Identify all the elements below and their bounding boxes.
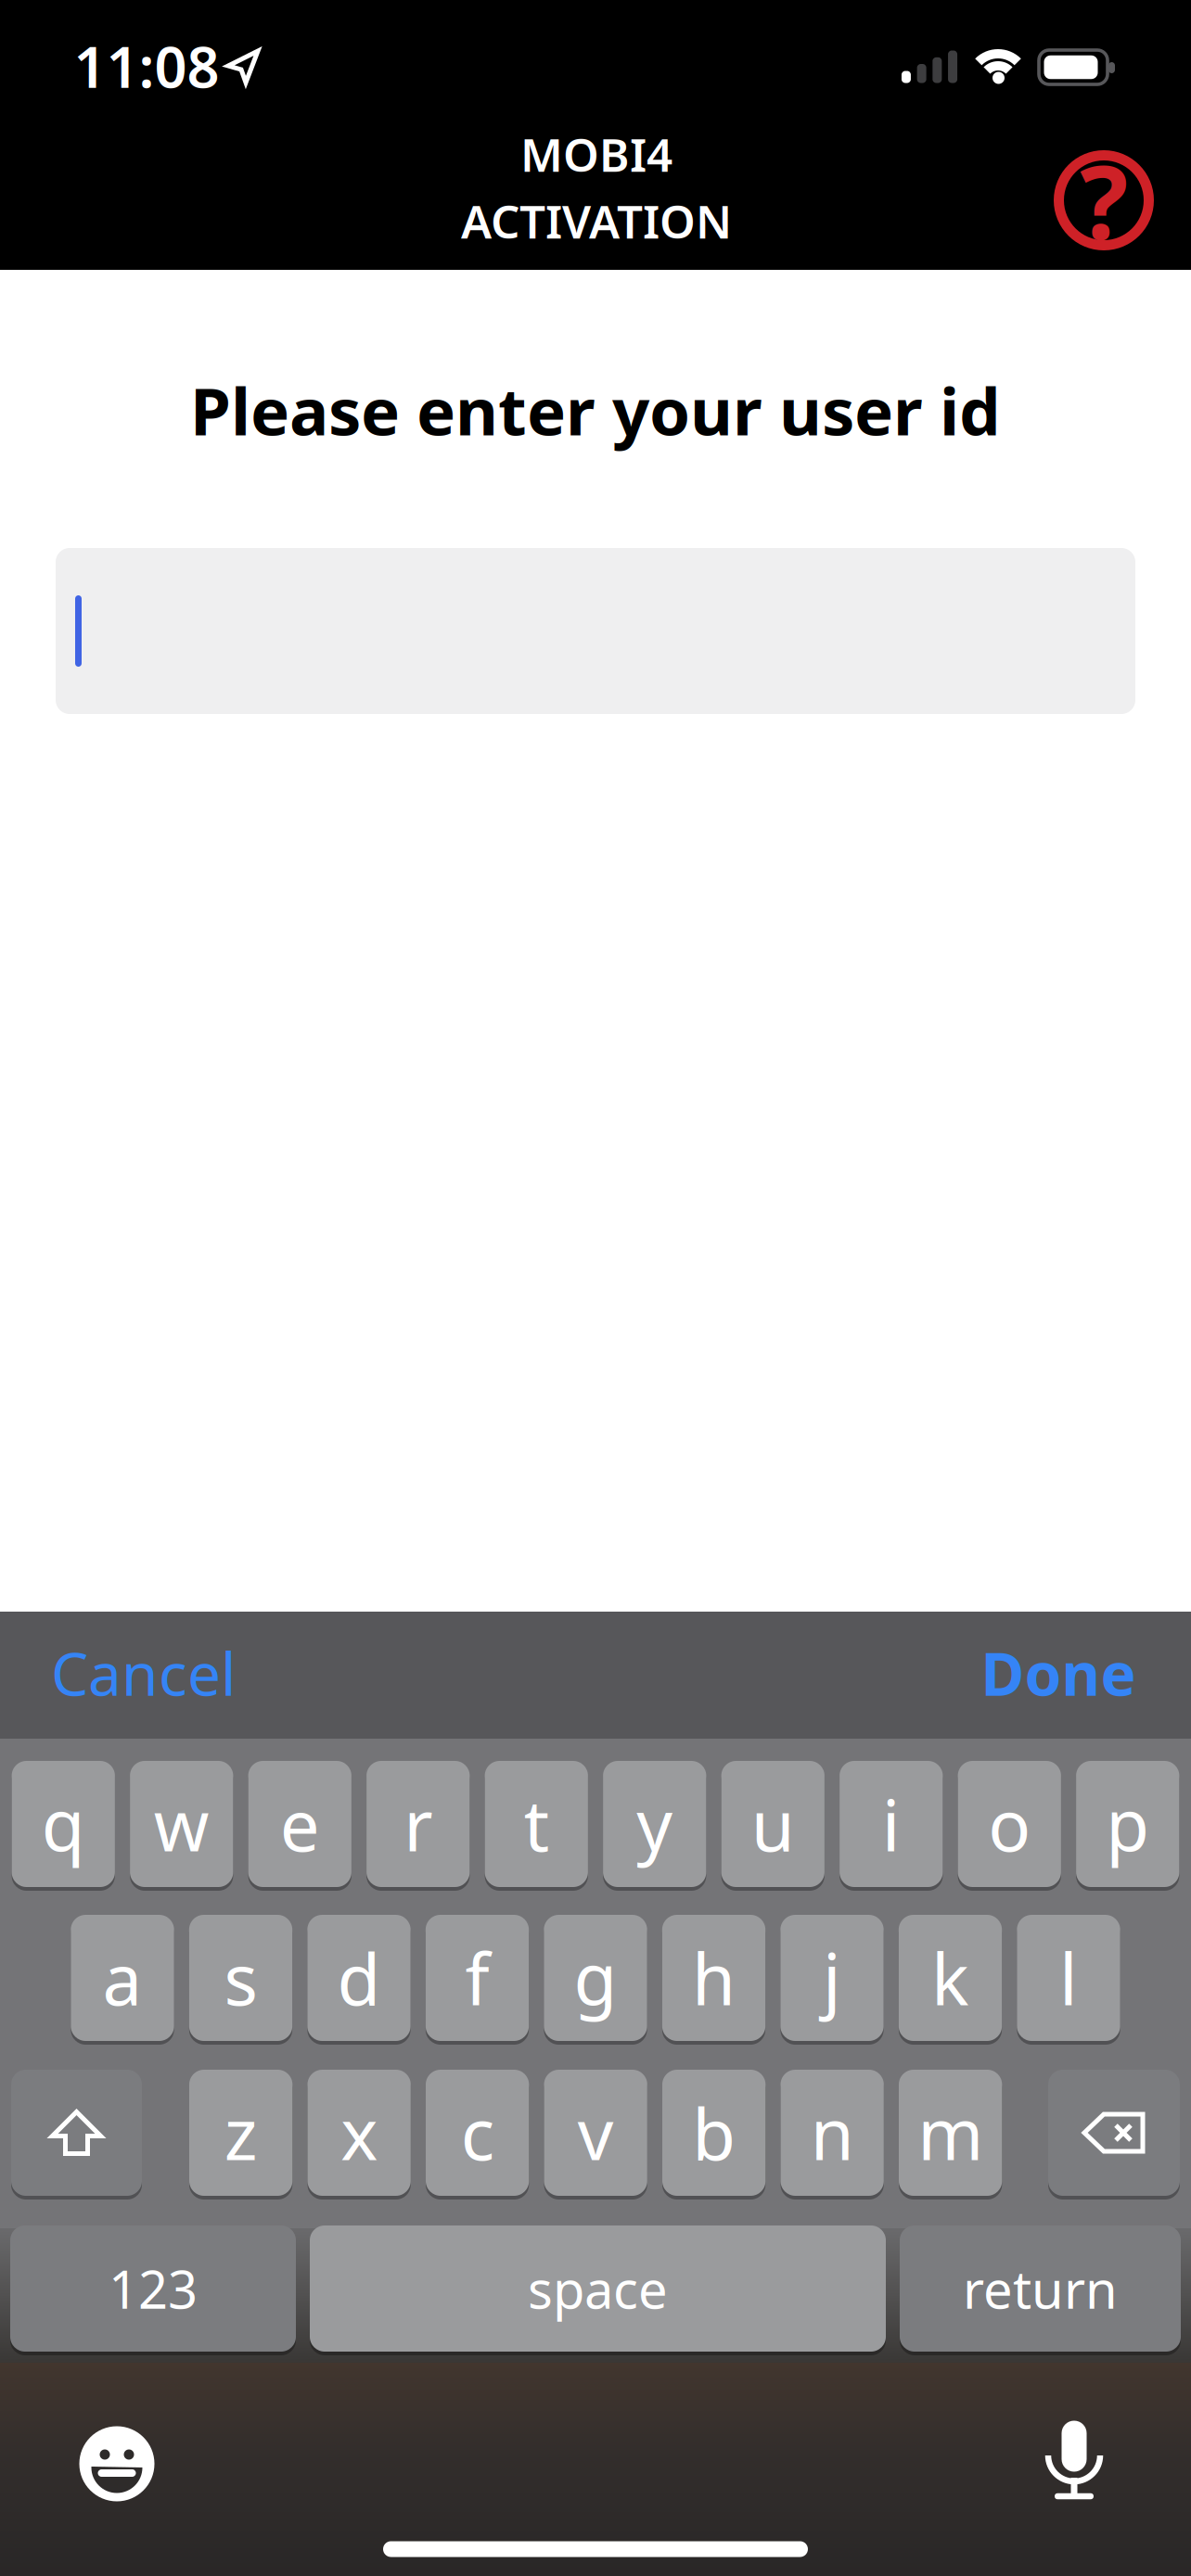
button[interactable]: j bbox=[780, 1913, 884, 2043]
button[interactable]: o bbox=[958, 1759, 1061, 1889]
staticText: 11:08 bbox=[74, 28, 219, 104]
button[interactable]: Done bbox=[981, 1633, 1136, 1712]
button[interactable]: b bbox=[662, 2068, 766, 2198]
button[interactable]: g bbox=[544, 1913, 647, 2043]
button[interactable]: Cancel bbox=[51, 1633, 237, 1712]
button[interactable]: e bbox=[248, 1759, 351, 1889]
button[interactable]: x bbox=[307, 2068, 411, 2198]
staticText: q bbox=[42, 1777, 85, 1871]
button[interactable]: h bbox=[662, 1913, 765, 2043]
staticText: i bbox=[882, 1777, 900, 1871]
staticText: a bbox=[102, 1931, 142, 2025]
staticText: p bbox=[1106, 1777, 1150, 1871]
staticText: g bbox=[574, 1931, 617, 2025]
button[interactable] bbox=[78, 2425, 156, 2503]
staticText: c bbox=[461, 2086, 494, 2179]
button[interactable]: d bbox=[307, 1913, 411, 2043]
button[interactable]: c bbox=[426, 2068, 529, 2198]
button[interactable]: f bbox=[426, 1913, 529, 2043]
staticText: Please enter your user id bbox=[190, 366, 1001, 453]
staticText: l bbox=[1059, 1931, 1078, 2025]
staticText: y bbox=[637, 1777, 673, 1871]
staticText: j bbox=[823, 1931, 841, 2025]
button[interactable]: w bbox=[130, 1759, 233, 1889]
staticText: b bbox=[692, 2086, 736, 2179]
button[interactable]: t bbox=[485, 1759, 588, 1889]
staticText: r bbox=[404, 1777, 433, 1871]
button[interactable] bbox=[1044, 2417, 1105, 2502]
button[interactable]: q bbox=[12, 1759, 115, 1889]
staticText: f bbox=[465, 1931, 489, 2025]
button[interactable]: s bbox=[189, 1913, 292, 2043]
staticText: h bbox=[692, 1931, 736, 2025]
staticText: 123 bbox=[109, 2254, 198, 2323]
button[interactable]: ? bbox=[1054, 150, 1154, 250]
staticText: MOBI4 bbox=[520, 124, 672, 184]
button[interactable]: u bbox=[721, 1759, 825, 1889]
button[interactable] bbox=[56, 548, 1135, 714]
staticText: u bbox=[751, 1777, 795, 1871]
staticText: o bbox=[988, 1777, 1031, 1871]
staticText: ? bbox=[1080, 133, 1128, 268]
staticText: e bbox=[280, 1777, 320, 1871]
staticText: v bbox=[578, 2086, 614, 2179]
button[interactable] bbox=[11, 2068, 142, 2198]
button[interactable]: n bbox=[781, 2068, 884, 2198]
button[interactable]: r bbox=[366, 1759, 470, 1889]
button[interactable]: 123 bbox=[10, 2224, 296, 2353]
button[interactable]: return bbox=[900, 2224, 1181, 2353]
button[interactable]: a bbox=[71, 1913, 174, 2043]
button[interactable]: y bbox=[603, 1759, 706, 1889]
staticText: s bbox=[224, 1931, 257, 2025]
button[interactable]: l bbox=[1017, 1913, 1120, 2043]
staticText: d bbox=[337, 1931, 381, 2025]
button[interactable]: z bbox=[189, 2068, 292, 2198]
staticText: space bbox=[528, 2254, 668, 2323]
staticText: w bbox=[154, 1777, 209, 1871]
staticText: x bbox=[341, 2086, 378, 2179]
button[interactable]: p bbox=[1076, 1759, 1179, 1889]
staticText: k bbox=[931, 1931, 969, 2025]
button[interactable]: k bbox=[899, 1913, 1002, 2043]
staticText: z bbox=[224, 2086, 258, 2179]
button[interactable]: v bbox=[544, 2068, 647, 2198]
button[interactable]: space bbox=[310, 2224, 886, 2353]
staticText: t bbox=[524, 1777, 549, 1871]
button[interactable]: i bbox=[840, 1759, 943, 1889]
staticText: m bbox=[917, 2086, 983, 2179]
staticText: return bbox=[963, 2254, 1118, 2323]
button[interactable] bbox=[1048, 2068, 1180, 2198]
button[interactable]: m bbox=[899, 2068, 1002, 2198]
staticText: n bbox=[810, 2086, 854, 2179]
staticText: ACTIVATION bbox=[461, 190, 732, 251]
staticText: Cancel bbox=[51, 1633, 237, 1712]
staticText: Done bbox=[981, 1633, 1136, 1712]
